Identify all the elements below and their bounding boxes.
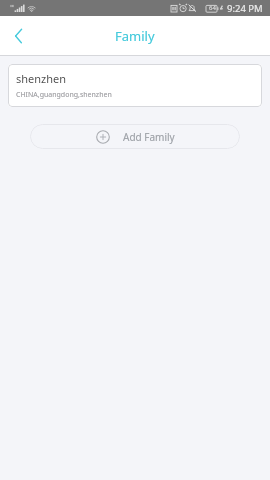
- button[interactable]: shenzhen: [8, 64, 262, 107]
- staticText: Add Family: [123, 130, 175, 144]
- staticText: CHINA,guangdong,shenzhen: [16, 90, 112, 100]
- button[interactable]: Add Family: [30, 124, 240, 149]
- staticText: Family: [115, 27, 155, 45]
- staticText: 64: [209, 4, 216, 12]
- staticText: 9:24 PM: [227, 2, 263, 15]
- staticText: shenzhen: [16, 71, 67, 86]
- button[interactable]: Back: [0, 16, 38, 55]
